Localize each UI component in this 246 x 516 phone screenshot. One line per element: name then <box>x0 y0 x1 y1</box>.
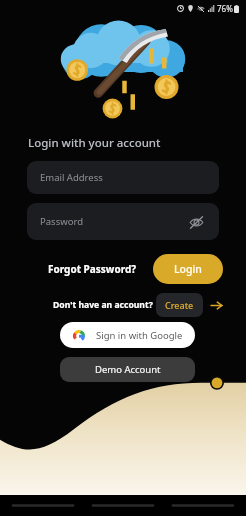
button[interactable]: Login <box>153 254 223 284</box>
staticText: 76% <box>217 3 233 14</box>
button[interactable]: Create <box>156 293 203 317</box>
button[interactable]: Password <box>27 203 219 240</box>
button[interactable]: Sign in with Google <box>60 322 195 348</box>
staticText: Login <box>174 262 202 276</box>
staticText: Password <box>40 215 83 228</box>
button[interactable]: Forgot Password? <box>44 258 141 280</box>
staticText: Create <box>165 299 194 311</box>
button[interactable]: Email Address <box>27 161 219 194</box>
staticText: Demo Account <box>95 363 161 376</box>
staticText: Forgot Password? <box>48 262 137 276</box>
button[interactable]: Show password <box>186 212 206 232</box>
staticText: Sign in with Google <box>96 329 183 342</box>
staticText: Email Address <box>40 171 103 184</box>
button[interactable]: Demo Account <box>60 357 195 382</box>
staticText: Login with your account <box>28 135 161 151</box>
staticText: Don't have an account? <box>53 299 153 311</box>
button[interactable]: Create account <box>209 298 223 312</box>
